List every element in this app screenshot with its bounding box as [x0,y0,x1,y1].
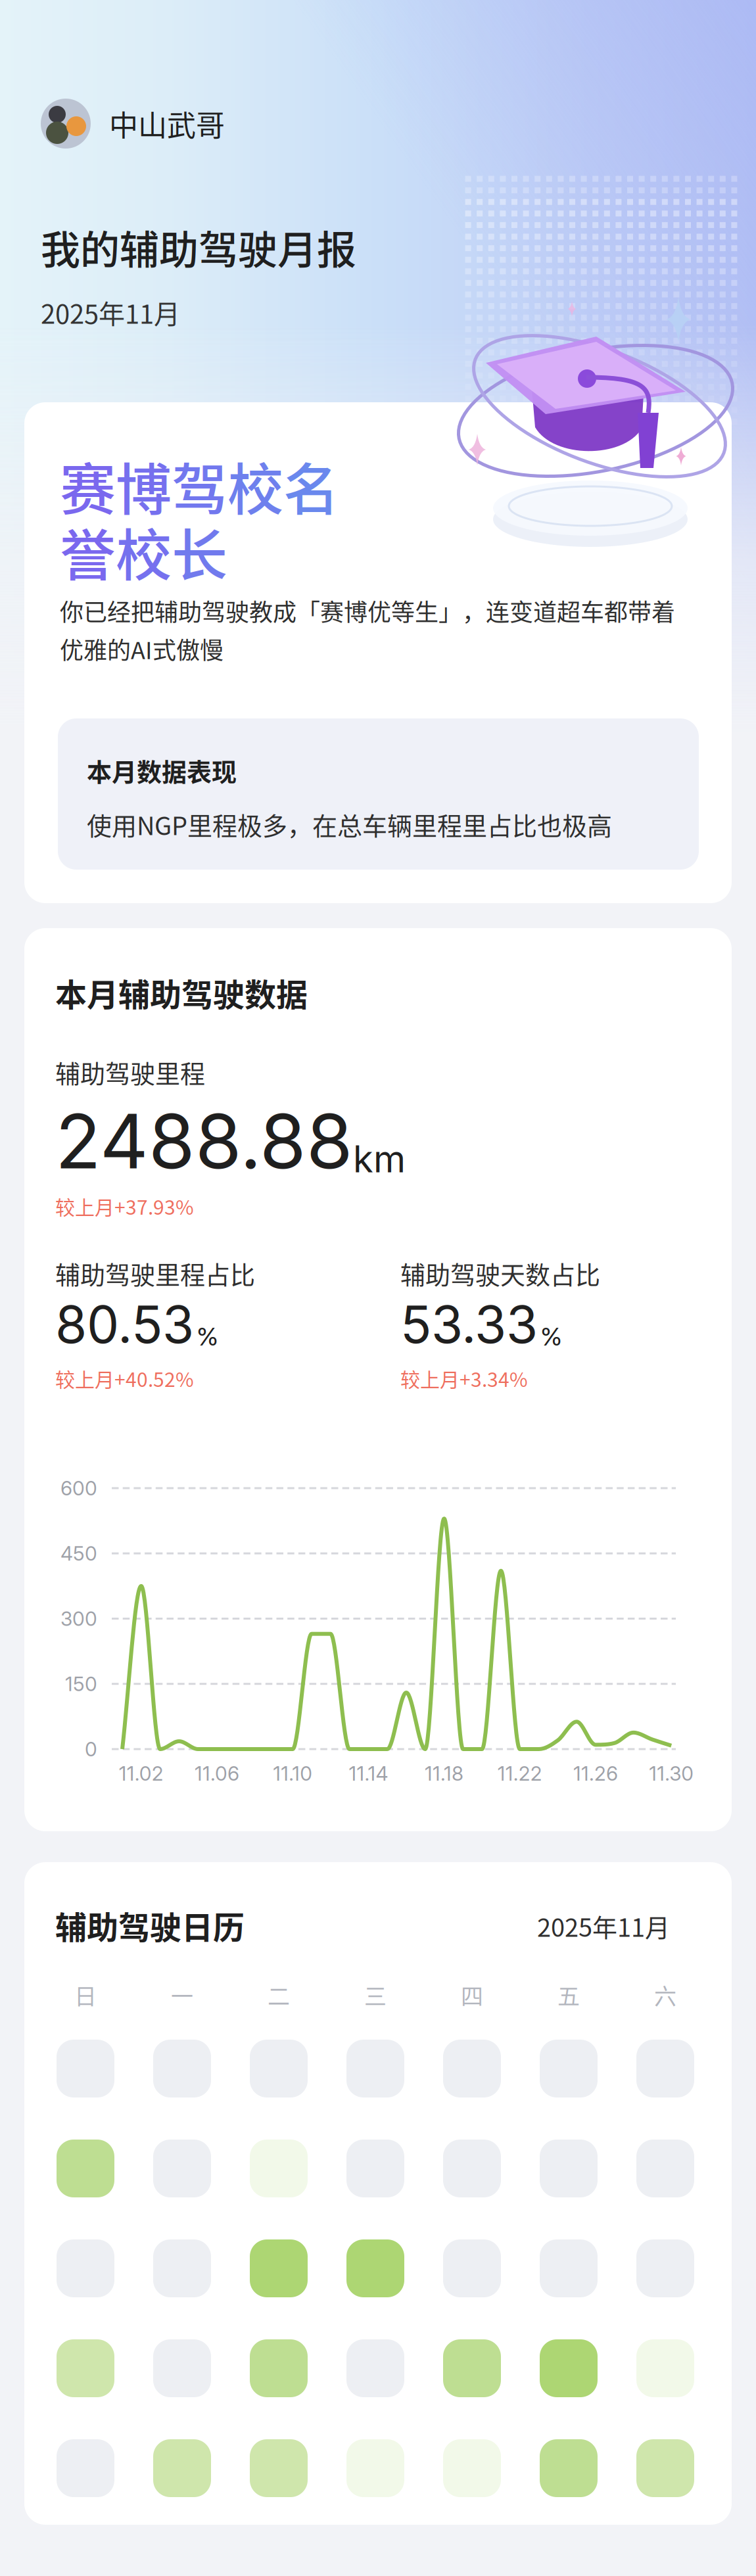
staticText: 11.30 [649,1762,694,1785]
staticText: 较上月+37.93% [55,1192,194,1220]
staticText: 较上月+40.52% [55,1364,194,1393]
staticText: 450 [60,1541,97,1565]
button[interactable]: 中山武哥 [41,97,317,150]
staticText: 0 [85,1737,97,1761]
staticText: 一 [171,1979,193,2011]
staticText: 本月数据表现 [87,752,237,788]
staticText: 校 [227,445,283,526]
staticText: 53.33 [400,1293,538,1356]
staticText: 辅助驾驶里程占比 [55,1255,255,1291]
staticText: 11.06 [195,1762,239,1785]
staticText: 11.26 [573,1762,618,1785]
staticText: 誉 [60,511,116,592]
staticText: 三 [364,1979,387,2011]
staticText: 四 [461,1979,483,2011]
staticText: 六 [654,1979,676,2011]
staticText: 你已经把辅助驾驶教成「赛博优等生」，连变道超车都带着 [60,593,675,628]
staticText: 驾 [172,445,227,526]
staticText: 11.02 [119,1762,164,1785]
staticText: 五 [557,1979,580,2011]
staticText: 本月辅助驾驶数据 [55,970,308,1015]
staticText: 中山武哥 [109,103,225,144]
staticText: % [197,1321,218,1352]
staticText: km [353,1137,406,1181]
staticText: 博 [116,445,172,526]
staticText: 300 [60,1607,97,1631]
staticText: 长 [172,511,227,592]
staticText: 较上月+3.34% [400,1364,528,1393]
staticText: 11.22 [498,1762,542,1785]
staticText: 80.53 [55,1293,194,1356]
staticText: 使用NGP里程极多，在总车辆里程里占比也极高 [87,806,612,842]
staticText: 2488.88 [55,1096,353,1186]
staticText: 11.10 [273,1762,312,1785]
staticText: 名 [283,445,339,526]
staticText: 辅助驾驶日历 [55,1902,245,1948]
staticText: 赛 [60,445,116,526]
staticText: 辅助驾驶里程 [55,1054,205,1090]
staticText: 二 [268,1979,290,2011]
staticText: % [540,1321,562,1352]
staticText: 日 [74,1979,97,2011]
staticText: 校 [116,511,172,592]
staticText: 150 [65,1672,97,1696]
staticText: 优雅的AI式傲慢 [60,632,224,666]
staticText: 辅助驾驶天数占比 [400,1255,600,1291]
staticText: 我的辅助驾驶月报 [41,219,356,276]
staticText: 2025年11月 [41,293,180,331]
staticText: 11.18 [425,1762,464,1785]
staticText: 11.14 [349,1762,388,1785]
staticText: 2025年11月 [537,1908,670,1944]
staticText: 600 [60,1476,97,1500]
